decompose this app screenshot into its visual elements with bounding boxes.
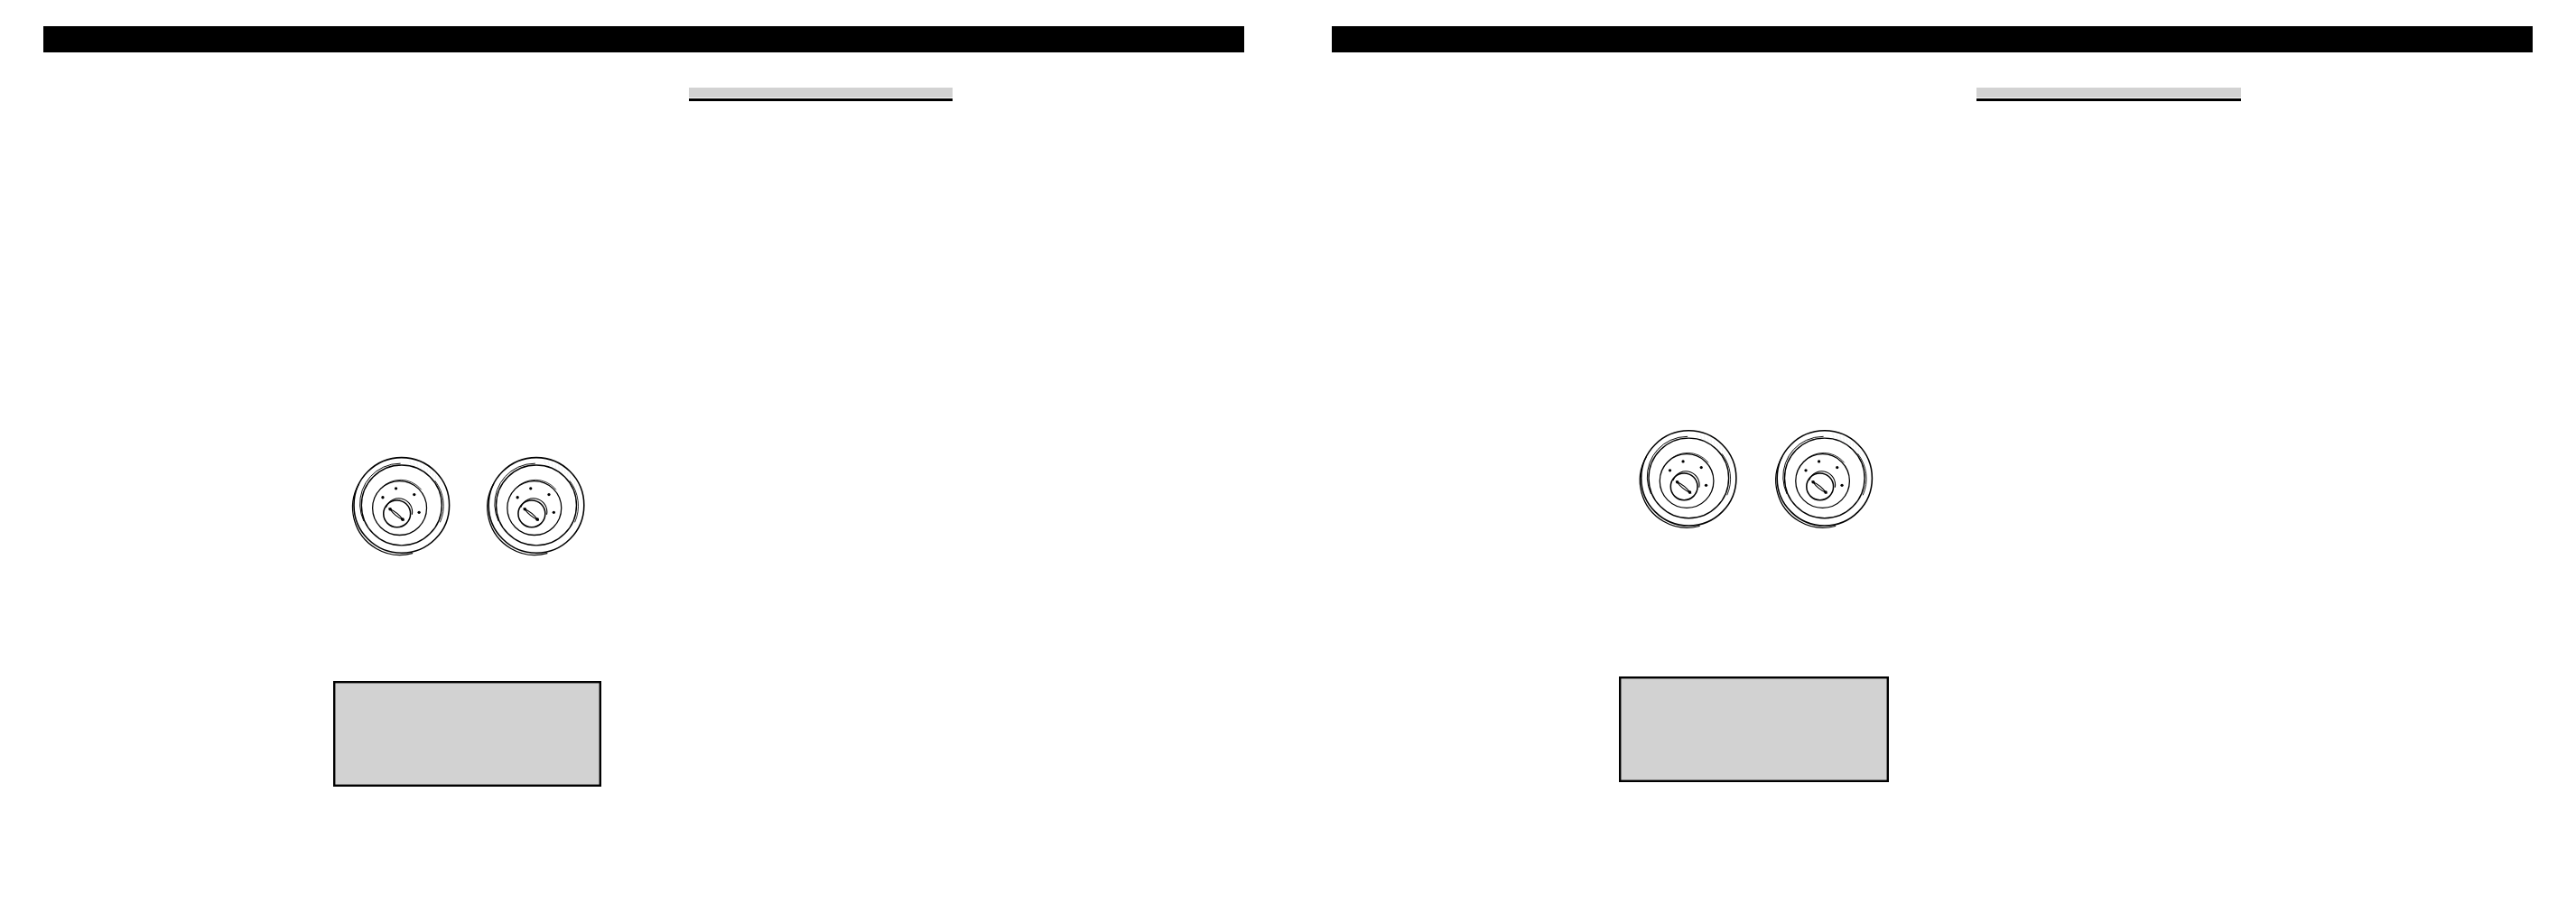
button[interactable]: Page header bbox=[43, 26, 1244, 52]
button[interactable]: Figure placeholder bbox=[333, 681, 601, 787]
button[interactable]: Figure caption bbox=[1976, 88, 2241, 101]
button[interactable]: Figure caption bbox=[689, 88, 953, 101]
button[interactable]: Figure placeholder bbox=[1619, 676, 1889, 782]
button[interactable]: Page header bbox=[1332, 26, 2533, 52]
